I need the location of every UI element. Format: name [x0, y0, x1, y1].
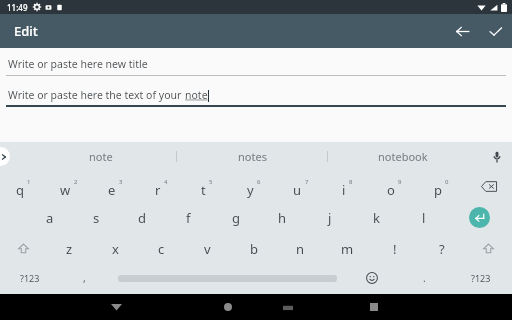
button[interactable]: i [324, 171, 371, 202]
staticText: t [201, 181, 206, 199]
staticText: r [155, 181, 161, 199]
staticText: m [341, 240, 354, 258]
staticText: Write or paste here new title [8, 57, 148, 71]
button[interactable]: Voice input [482, 142, 512, 171]
button[interactable]: ?123 [449, 264, 512, 292]
staticText: ? [439, 240, 445, 258]
button[interactable]: m [324, 233, 371, 264]
staticText: b [250, 240, 258, 258]
staticText: c [158, 240, 165, 258]
staticText: w [60, 181, 71, 199]
staticText: 0 [445, 178, 449, 186]
staticText: f [186, 209, 191, 227]
button[interactable]: j [306, 202, 353, 233]
button[interactable]: Shift [0, 233, 46, 264]
button[interactable]: Recent apps [340, 294, 407, 320]
button[interactable]: ?123 [0, 264, 59, 292]
staticText: . [423, 271, 426, 285]
staticText: ! [393, 240, 397, 258]
staticText: e [108, 181, 116, 199]
button[interactable]: Space [109, 264, 345, 292]
button[interactable]: r [138, 171, 184, 202]
button[interactable]: Write or paste here new title [6, 57, 506, 76]
staticText: 2 [74, 178, 78, 186]
button[interactable]: n [277, 233, 324, 264]
staticText: v [204, 240, 211, 258]
staticText: d [138, 209, 146, 227]
button[interactable]: u [277, 171, 324, 202]
staticText: ?123 [20, 272, 40, 284]
staticText: 11:49 [7, 2, 28, 13]
button[interactable]: Back [446, 14, 478, 48]
staticText: , [83, 271, 86, 285]
button[interactable]: Backspace [465, 171, 512, 202]
button[interactable]: note [26, 142, 176, 171]
staticText: l [422, 209, 426, 227]
staticText: u [293, 181, 302, 199]
button[interactable]: notes [177, 142, 327, 171]
staticText: 9 [398, 178, 402, 186]
button[interactable]: k [353, 202, 400, 233]
button[interactable]: ? [418, 233, 465, 264]
staticText: notes [238, 149, 267, 164]
button[interactable]: t [184, 171, 230, 202]
button[interactable]: b [230, 233, 277, 264]
button[interactable]: z [46, 233, 92, 264]
staticText: 1 [27, 178, 31, 186]
staticText: x [112, 240, 119, 258]
staticText: y [247, 181, 254, 199]
staticText: 8 [349, 178, 353, 186]
staticText: z [66, 240, 73, 258]
staticText: 4 [164, 178, 168, 186]
staticText: h [278, 209, 287, 227]
staticText: 3 [119, 178, 123, 186]
button[interactable]: s [73, 202, 119, 233]
staticText: 5 [209, 178, 213, 186]
staticText: n [296, 240, 305, 258]
staticText: note [89, 149, 113, 164]
staticText: a [46, 209, 54, 227]
button[interactable]: d [119, 202, 165, 233]
staticText: ?123 [471, 272, 491, 284]
button[interactable]: y [230, 171, 277, 202]
staticText: q [16, 181, 24, 199]
button[interactable]: q [0, 171, 46, 202]
button[interactable]: l [400, 202, 447, 233]
button[interactable]: c [138, 233, 184, 264]
button[interactable]: Shift [465, 233, 512, 264]
button[interactable]: Enter [447, 202, 512, 233]
button[interactable]: More suggestions [0, 147, 10, 166]
staticText: g [232, 209, 240, 227]
button[interactable]: a [27, 202, 73, 233]
button[interactable]: v [184, 233, 230, 264]
staticText: Edit [14, 22, 38, 40]
button[interactable]: h [259, 202, 306, 233]
button[interactable]: o [371, 171, 418, 202]
button[interactable]: e [92, 171, 138, 202]
button[interactable]: x [92, 233, 138, 264]
button[interactable]: f [165, 202, 212, 233]
staticText: Write or paste here the text of your [8, 88, 185, 102]
button[interactable]: , [59, 264, 109, 292]
button[interactable]: w [46, 171, 92, 202]
staticText: 6 [257, 178, 261, 186]
button[interactable]: ! [371, 233, 418, 264]
button[interactable]: Emoji [345, 264, 399, 292]
staticText: j [328, 209, 332, 227]
button[interactable]: Home [198, 294, 258, 320]
button[interactable]: p [418, 171, 465, 202]
staticText: i [342, 181, 346, 199]
button[interactable]: Back [75, 294, 157, 320]
button[interactable]: notebook [328, 142, 478, 171]
button[interactable]: Hide keyboard [258, 294, 318, 320]
button[interactable]: Save [478, 14, 512, 48]
staticText: note [185, 88, 208, 102]
staticText: 7 [305, 178, 309, 186]
button[interactable]: g [212, 202, 259, 233]
staticText: notebook [378, 149, 428, 164]
staticText: s [93, 209, 100, 227]
staticText: p [434, 181, 442, 199]
button[interactable]: Write or paste here the text of your [6, 88, 506, 107]
staticText: o [387, 181, 395, 199]
button[interactable]: . [399, 264, 449, 292]
